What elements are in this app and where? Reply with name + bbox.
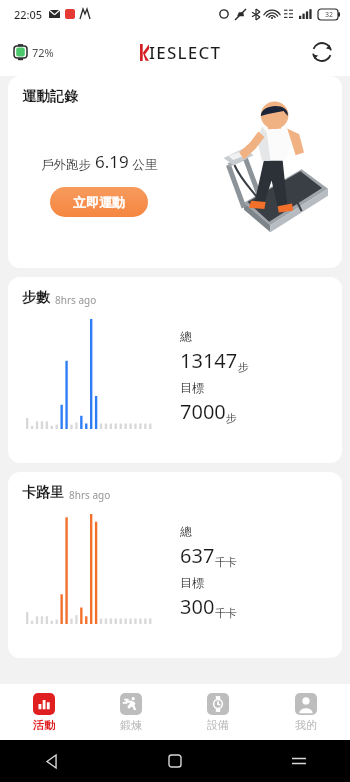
button[interactable]: 卡路里: [8, 472, 342, 658]
staticText: 戶外跑步: [41, 156, 95, 173]
staticText: 鍛煉: [120, 718, 142, 732]
button[interactable]: Recents: [286, 748, 312, 774]
staticText: 活動: [33, 718, 55, 732]
button[interactable]: Home: [162, 748, 188, 774]
staticText: 32: [325, 10, 334, 20]
staticText: 總: [180, 329, 192, 344]
staticText: 總: [180, 524, 192, 539]
staticText: 目標: [180, 380, 204, 395]
staticText: 13147: [180, 347, 238, 374]
staticText: 72%: [32, 45, 54, 60]
staticText: 8hrs ago: [55, 293, 97, 307]
staticText: 300: [180, 593, 215, 620]
button[interactable]: Sync: [308, 38, 336, 66]
button[interactable]: 設備: [174, 684, 262, 740]
staticText: 步: [226, 411, 237, 425]
staticText: 設備: [207, 718, 229, 732]
staticText: 千卡: [215, 555, 237, 569]
button[interactable]: 活動: [0, 684, 87, 740]
staticText: 步數: [22, 289, 50, 307]
staticText: 8hrs ago: [69, 488, 111, 502]
staticText: 千卡: [215, 606, 237, 620]
staticText: 6.19: [95, 150, 129, 173]
staticText: 目標: [180, 575, 204, 590]
staticText: 立即運動: [73, 194, 125, 210]
staticText: 步: [238, 360, 249, 374]
button[interactable]: 立即運動: [50, 187, 148, 217]
staticText: 637: [180, 542, 215, 569]
staticText: 公里: [129, 156, 158, 173]
button[interactable]: 鍛煉: [87, 684, 174, 740]
button[interactable]: 步數: [8, 277, 342, 463]
button[interactable]: 我的: [262, 684, 350, 740]
staticText: 運動記錄: [22, 88, 78, 106]
button[interactable]: Back: [38, 748, 64, 774]
staticText: 卡路里: [22, 484, 64, 502]
staticText: IESLECT: [149, 41, 222, 64]
staticText: 我的: [295, 718, 317, 732]
button[interactable]: 運動記錄: [8, 76, 342, 268]
staticText: 7000: [180, 398, 226, 425]
staticText: 22:05: [14, 7, 43, 22]
